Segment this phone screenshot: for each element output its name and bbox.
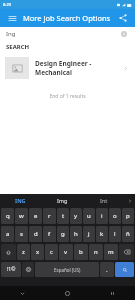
staticText: s — [20, 230, 23, 238]
staticText: i — [101, 212, 103, 220]
button[interactable]: i — [96, 208, 108, 224]
button[interactable]: Img — [41, 194, 83, 207]
staticText: l — [114, 230, 116, 238]
button[interactable]: h — [70, 226, 82, 242]
staticText: Español (US) — [54, 267, 81, 273]
button[interactable]: b — [74, 244, 88, 260]
button[interactable]: Keyboard settings — [22, 262, 34, 277]
staticText: h — [74, 230, 78, 238]
staticText: q — [6, 212, 10, 220]
staticText: SEARCH — [6, 43, 30, 51]
staticText: e — [34, 212, 38, 220]
staticText: n — [94, 248, 98, 256]
button[interactable]: v — [59, 244, 73, 260]
button[interactable]: Share — [116, 11, 130, 25]
staticText: t — [62, 212, 65, 220]
button[interactable]: g — [57, 226, 69, 242]
staticText: y — [74, 212, 78, 220]
button[interactable]: u — [83, 208, 95, 224]
button[interactable]: ñ — [122, 226, 134, 242]
staticText: k — [100, 230, 104, 238]
staticText: a — [6, 230, 10, 238]
button[interactable]: d — [29, 226, 42, 242]
button[interactable]: Clear search — [119, 29, 129, 39]
button[interactable]: Search — [115, 262, 134, 277]
button[interactable]: . — [100, 262, 114, 277]
button[interactable]: Int — [83, 194, 125, 207]
staticText: ñ — [126, 230, 130, 238]
button[interactable]: z — [17, 244, 30, 260]
button[interactable]: Hide keyboard — [0, 286, 45, 300]
staticText: v — [64, 248, 68, 256]
staticText: Img — [57, 197, 68, 204]
staticText: More Job Search Options — [23, 13, 116, 23]
staticText: Ing — [6, 30, 16, 38]
staticText: x — [36, 248, 40, 256]
staticText: g — [61, 230, 65, 238]
staticText: f — [48, 230, 51, 238]
button[interactable]: o — [109, 208, 121, 224]
button[interactable]: f — [43, 226, 56, 242]
staticText: ING — [15, 197, 26, 204]
button[interactable]: Home — [45, 286, 90, 300]
staticText: Int — [100, 197, 108, 204]
button[interactable]: Recent apps — [90, 286, 135, 300]
button[interactable]: y — [70, 208, 82, 224]
button[interactable]: n — [89, 244, 103, 260]
staticText: z — [22, 248, 25, 256]
staticText: m — [108, 248, 114, 256]
staticText: o — [113, 212, 117, 220]
button[interactable]: w — [15, 208, 28, 224]
button[interactable]: k — [96, 226, 108, 242]
button[interactable]: m — [104, 244, 118, 260]
button[interactable]: Backspace — [119, 244, 134, 260]
staticText: !1© — [7, 266, 16, 273]
staticText: d — [34, 230, 38, 238]
staticText: b — [79, 248, 83, 256]
button[interactable]: x — [31, 244, 44, 260]
staticText: r — [48, 212, 51, 220]
button[interactable]: t — [57, 208, 69, 224]
staticText: 8:29 — [3, 2, 11, 7]
staticText: . — [106, 266, 108, 274]
button[interactable]: c — [45, 244, 58, 260]
staticText: c — [50, 248, 53, 256]
button[interactable]: !1© — [1, 262, 21, 277]
button[interactable]: p — [122, 208, 134, 224]
button[interactable]: r — [43, 208, 56, 224]
staticText: j — [88, 230, 90, 238]
button[interactable]: s — [15, 226, 28, 242]
staticText: u — [87, 212, 91, 220]
button[interactable]: Design Engineer - — [0, 53, 135, 83]
button[interactable]: Español (US) — [35, 262, 99, 277]
staticText: w — [19, 212, 24, 220]
staticText: End of 1 results — [0, 93, 135, 100]
button[interactable]: j — [83, 226, 95, 242]
button[interactable]: Menu — [5, 11, 19, 25]
staticText: Mechanical — [35, 68, 72, 77]
button[interactable]: q — [1, 208, 14, 224]
button[interactable]: More suggestions — [125, 194, 135, 207]
staticText: p — [126, 212, 130, 220]
button[interactable]: Shift — [1, 244, 16, 260]
button[interactable]: a — [1, 226, 14, 242]
button[interactable]: e — [29, 208, 42, 224]
button[interactable]: Ing — [0, 27, 135, 41]
button[interactable]: ING — [0, 194, 41, 207]
button[interactable]: l — [109, 226, 121, 242]
staticText: Design Engineer - — [35, 59, 92, 68]
